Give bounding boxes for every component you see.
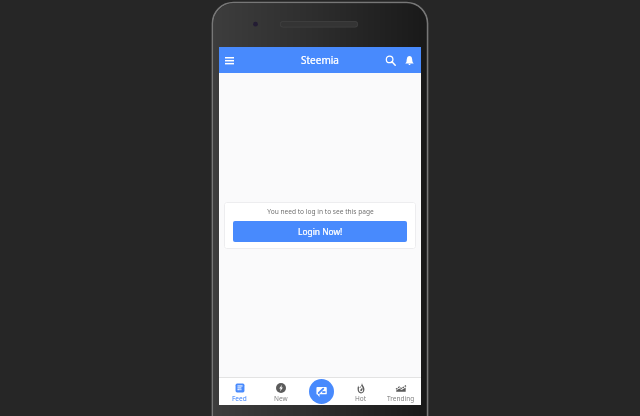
button[interactable]: Notifications: [400, 51, 419, 70]
staticText: You need to log in to see this page: [267, 207, 374, 216]
staticText: Hot: [355, 394, 367, 403]
staticText: New: [274, 394, 288, 403]
button[interactable]: New: [260, 377, 301, 405]
staticText: Feed: [232, 394, 247, 403]
staticText: Login Now!: [298, 226, 343, 237]
button[interactable]: Hot: [341, 377, 381, 405]
button[interactable]: Create post: [309, 379, 334, 404]
button[interactable]: Feed: [219, 377, 260, 405]
staticText: Steemia: [301, 53, 339, 67]
button[interactable]: Login Now!: [233, 221, 407, 242]
button[interactable]: Trending: [381, 377, 421, 405]
button[interactable]: Search: [381, 51, 400, 70]
button[interactable]: Open navigation menu: [219, 47, 240, 73]
staticText: Trending: [387, 394, 415, 403]
